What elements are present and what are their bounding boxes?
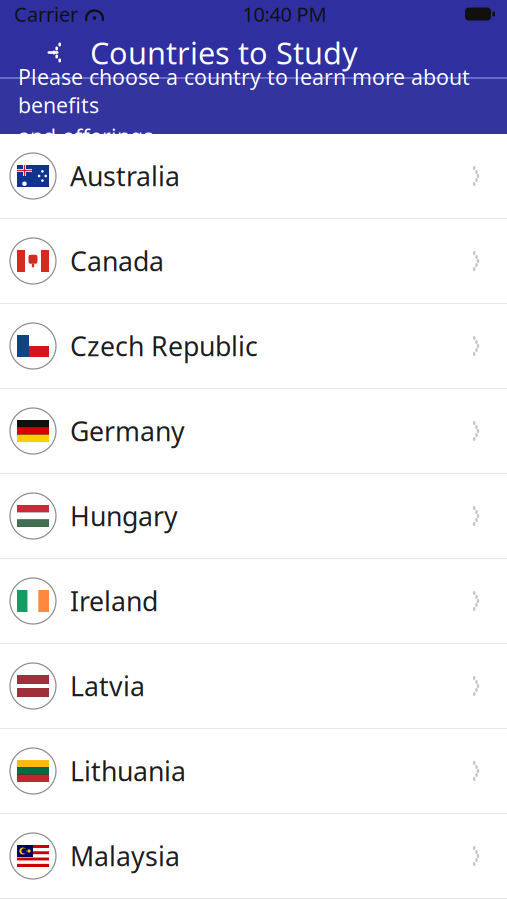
button[interactable]: Czech Republic <box>0 304 507 389</box>
staticText: Germany <box>70 413 185 449</box>
staticText: Australia <box>70 158 180 194</box>
button[interactable]: Malaysia <box>0 814 507 899</box>
staticText: Hungary <box>70 498 178 534</box>
staticText: 10:40 PM <box>242 1 326 27</box>
button[interactable]: Hungary <box>0 474 507 559</box>
button[interactable]: Lithuania <box>0 729 507 814</box>
staticText: Latvia <box>70 668 145 704</box>
staticText: and offerings <box>18 122 153 150</box>
staticText: Countries to Study <box>90 32 358 73</box>
button[interactable]: Australia <box>0 134 507 219</box>
staticText: Ireland <box>70 583 158 619</box>
staticText: Malaysia <box>70 838 180 874</box>
staticText: Canada <box>70 243 164 279</box>
staticText: Czech Republic <box>70 328 258 364</box>
button[interactable]: Back <box>30 28 76 76</box>
button[interactable]: Latvia <box>0 644 507 729</box>
staticText: Lithuania <box>70 753 186 789</box>
staticText: Please choose a country to learn more ab… <box>18 62 470 119</box>
button[interactable]: Canada <box>0 219 507 304</box>
button[interactable]: Germany <box>0 389 507 474</box>
button[interactable]: Ireland <box>0 559 507 644</box>
staticText: Carrier <box>14 1 78 27</box>
